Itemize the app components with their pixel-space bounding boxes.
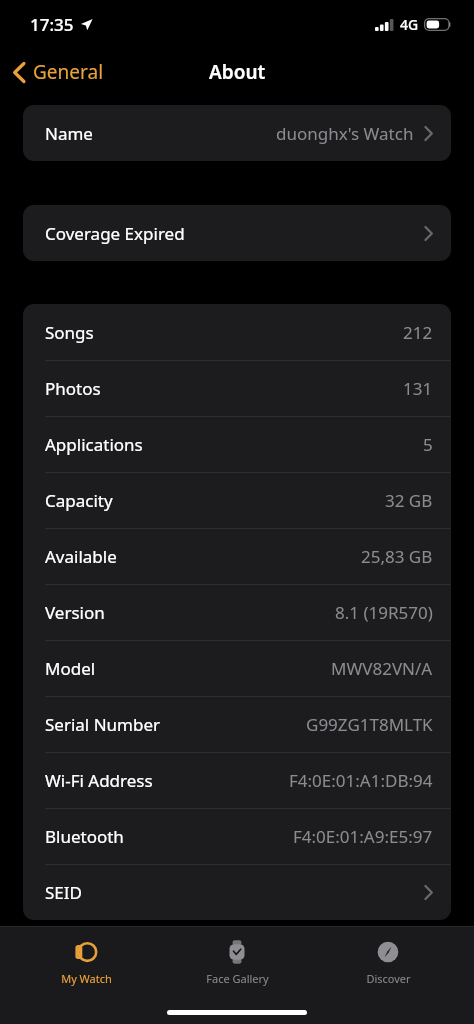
staticText: 32 GB (385, 489, 433, 512)
staticText: Available (45, 545, 117, 568)
staticText: Name (45, 122, 93, 145)
button[interactable]: Serial Number (23, 697, 451, 752)
staticText: 212 (403, 321, 433, 344)
button[interactable]: General (0, 51, 116, 93)
button[interactable]: Bluetooth (23, 809, 451, 864)
staticText: SEID (45, 881, 82, 904)
other: My Watch (71, 937, 101, 967)
staticText: duonghx's Watch (276, 122, 414, 145)
button[interactable]: Photos (23, 361, 451, 416)
staticText: Capacity (45, 489, 113, 512)
button[interactable]: Capacity (23, 473, 451, 528)
staticText: 4G (400, 15, 419, 34)
staticText: 5 (423, 433, 433, 456)
staticText: Songs (45, 321, 94, 344)
other: Discover (373, 937, 403, 967)
staticText: Wi-Fi Address (45, 769, 153, 792)
staticText: Bluetooth (45, 825, 124, 848)
button[interactable]: Wi-Fi Address (23, 753, 451, 808)
other: Face Gallery (222, 937, 252, 967)
staticText: Photos (45, 377, 101, 400)
staticText: Applications (45, 433, 143, 456)
button[interactable]: Available (23, 529, 451, 584)
staticText: F4:0E:01:A9:E5:97 (293, 825, 433, 848)
staticText: MWV82VN/A (331, 657, 433, 680)
staticText: Version (45, 601, 105, 624)
staticText: Model (45, 657, 96, 680)
button[interactable]: Model (23, 641, 451, 696)
staticText: Face Gallery (206, 971, 269, 986)
staticText: Discover (366, 971, 411, 986)
staticText: My Watch (61, 971, 112, 986)
staticText: 131 (403, 377, 433, 400)
button[interactable]: Songs (23, 304, 451, 360)
button[interactable]: Face Gallery (172, 933, 302, 990)
staticText: Coverage Expired (45, 222, 185, 245)
button[interactable]: SEID (23, 865, 451, 920)
staticText: General (33, 59, 104, 85)
button[interactable]: Coverage Expired (23, 205, 451, 261)
button[interactable]: Discover (323, 933, 453, 990)
button[interactable]: Version (23, 585, 451, 640)
staticText: F4:0E:01:A1:DB:94 (289, 769, 433, 792)
staticText: G99ZG1T8MLTK (306, 713, 433, 736)
staticText: 8.1 (19R570) (335, 601, 433, 624)
button[interactable]: Name (23, 105, 451, 161)
staticText: About (209, 59, 266, 85)
staticText: 17:35 (30, 13, 74, 36)
staticText: 25,83 GB (361, 545, 433, 568)
staticText: Serial Number (45, 713, 161, 736)
button[interactable]: Applications (23, 417, 451, 472)
button[interactable]: My Watch (21, 933, 151, 990)
